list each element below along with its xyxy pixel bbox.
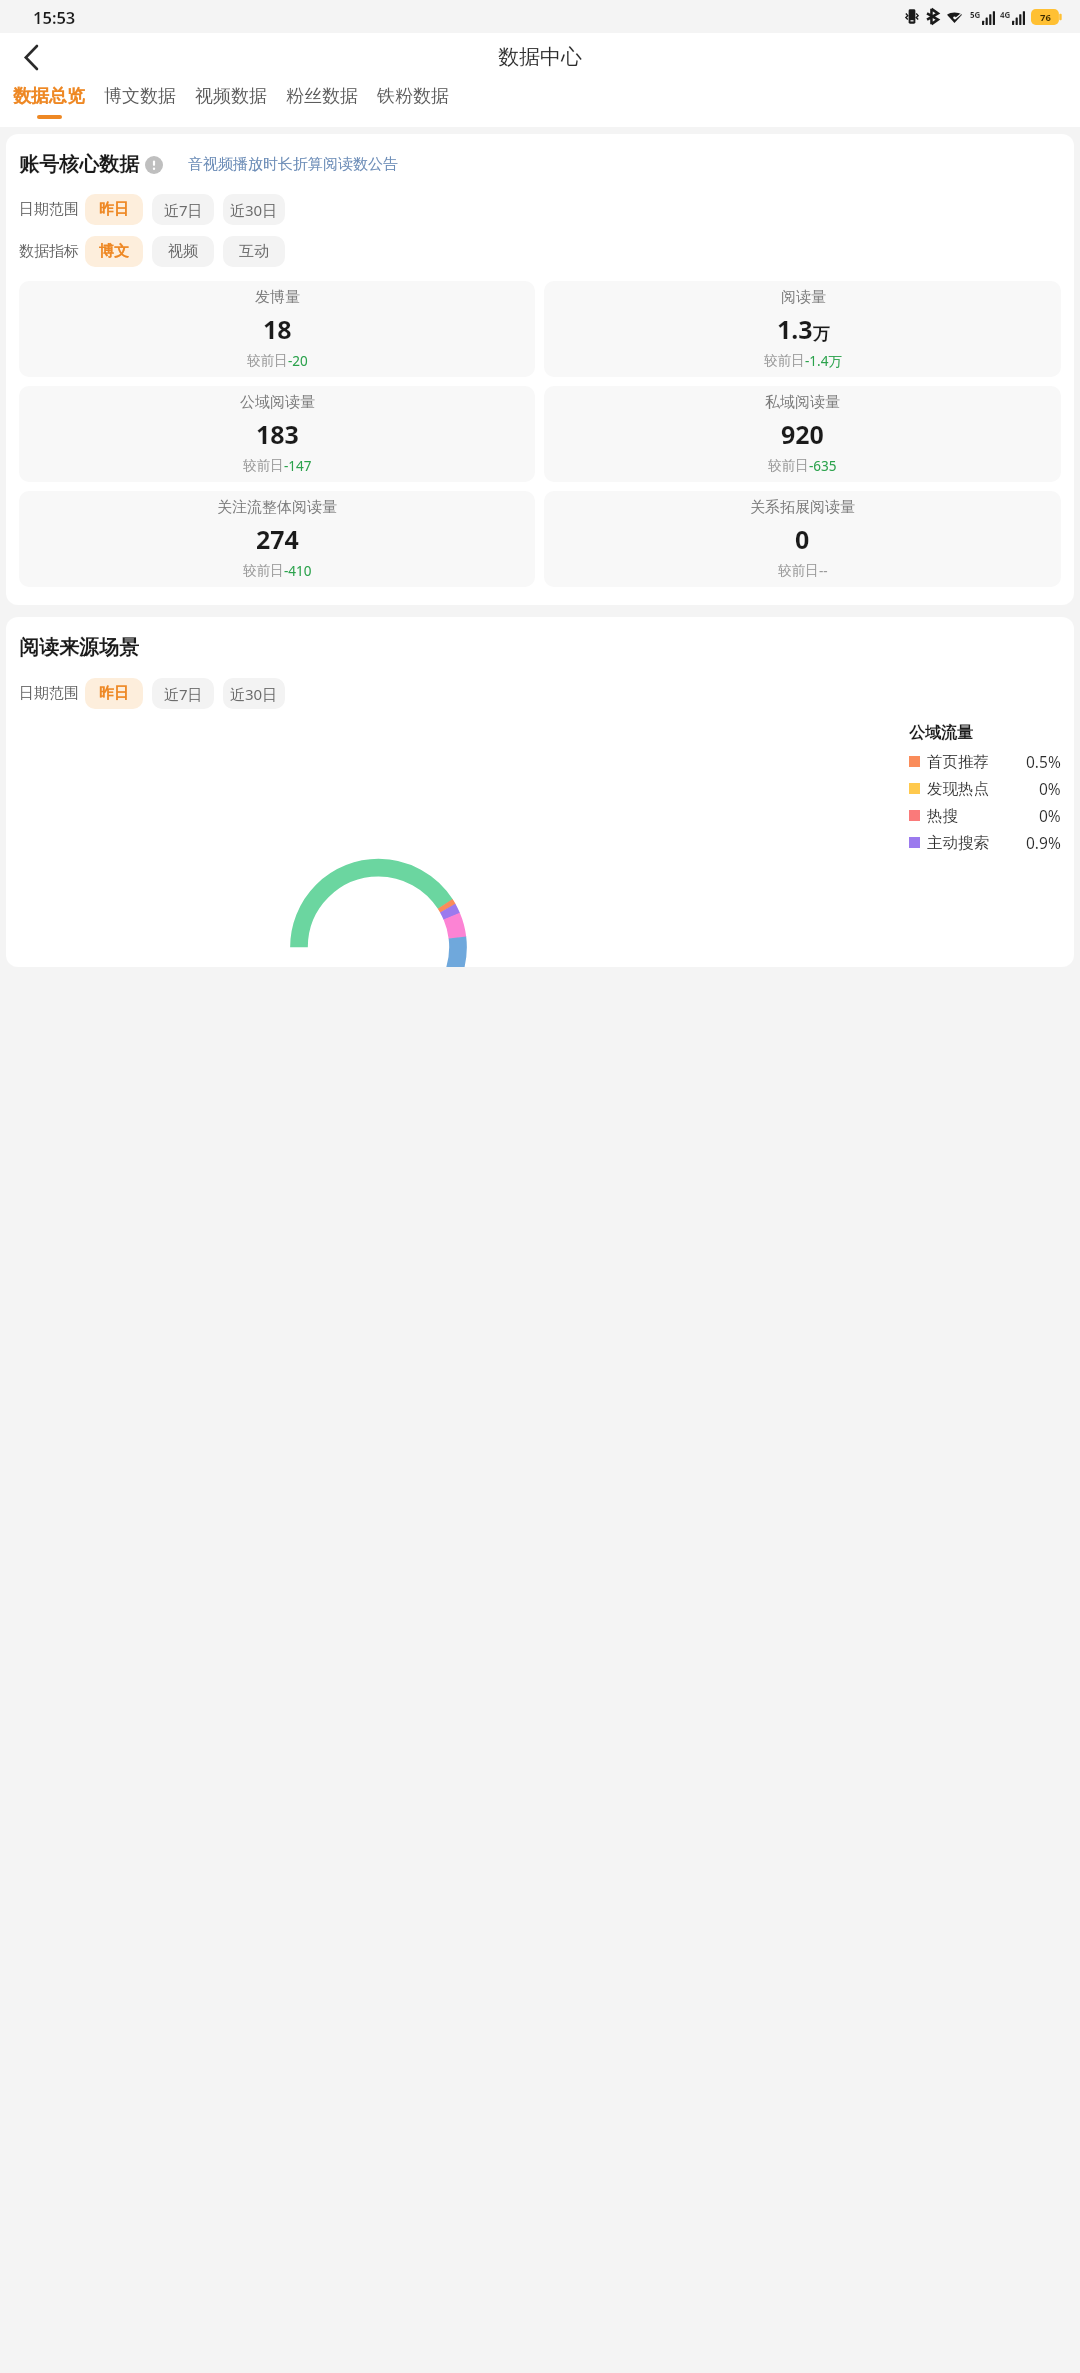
staticText: 近30日 [230, 200, 278, 220]
staticText: 较前日 [768, 457, 809, 474]
staticText: 公域流量 [909, 723, 973, 743]
staticText: 0% [1039, 778, 1061, 799]
staticText: 关系拓展阅读量 [750, 498, 855, 517]
staticText: 1.3 [777, 312, 813, 346]
button[interactable]: 铁粉数据 [377, 80, 449, 115]
staticText: 铁粉数据 [377, 85, 449, 108]
staticText: 博文数据 [104, 85, 176, 108]
button[interactable]: Back [8, 34, 54, 80]
staticText: 昨日 [99, 200, 129, 219]
staticText: 较前日 [778, 562, 819, 579]
staticText: 数据指标 [19, 242, 79, 261]
staticText: 阅读来源场景 [19, 635, 139, 660]
staticText: 首页推荐 [927, 752, 989, 772]
button[interactable]: 近7日 [152, 678, 214, 709]
staticText: -147 [284, 457, 312, 475]
staticText: 发博量 [255, 288, 300, 307]
staticText: 4G [1000, 9, 1011, 20]
staticText: 公域阅读量 [240, 393, 315, 412]
staticText: 音视频播放时长折算阅读数公告 [188, 155, 398, 174]
staticText: 发现热点 [927, 779, 989, 799]
button[interactable]: Info [145, 156, 163, 174]
button[interactable]: 视频 [152, 236, 214, 267]
staticText: 0.5% [1026, 751, 1061, 772]
button[interactable]: 昨日 [85, 194, 143, 225]
staticText: 274 [256, 522, 299, 556]
staticText: 较前日 [247, 352, 288, 369]
staticText: 万 [813, 324, 830, 345]
button[interactable]: 阅读量 [544, 281, 1061, 377]
staticText: 920 [781, 417, 824, 451]
button[interactable]: 近30日 [223, 194, 285, 225]
staticText: -410 [284, 562, 312, 580]
button[interactable]: 近30日 [223, 678, 285, 709]
button[interactable]: 互动 [223, 236, 285, 267]
staticText: 私域阅读量 [765, 393, 840, 412]
staticText: 0.9% [1026, 832, 1061, 853]
staticText: -- [819, 562, 828, 580]
button[interactable]: 发博量 [19, 281, 535, 377]
button[interactable]: 粉丝数据 [286, 80, 358, 115]
staticText: 近30日 [230, 684, 278, 704]
button[interactable]: 音视频播放时长折算阅读数公告 [188, 155, 398, 174]
button[interactable]: 博文 [85, 236, 143, 267]
staticText: 日期范围 [19, 684, 79, 703]
staticText: -20 [288, 352, 308, 370]
button[interactable]: 关注流整体阅读量 [19, 491, 535, 587]
staticText: 视频数据 [195, 85, 267, 108]
staticText: 数据中心 [498, 44, 582, 70]
button[interactable]: 近7日 [152, 194, 214, 225]
staticText: 近7日 [164, 684, 203, 704]
staticText: 数据总览 [13, 85, 85, 108]
staticText: 较前日 [243, 457, 284, 474]
staticText: 阅读量 [781, 288, 826, 307]
staticText: -1.4万 [805, 352, 842, 370]
staticText: 5G [970, 9, 981, 20]
staticText: -635 [809, 457, 837, 475]
staticText: 18 [263, 312, 292, 346]
staticText: 近7日 [164, 200, 203, 220]
button[interactable]: 数据总览 [13, 80, 85, 119]
button[interactable]: 昨日 [85, 678, 143, 709]
button[interactable]: 博文数据 [104, 80, 176, 115]
staticText: 互动 [239, 242, 269, 261]
staticText: 日期范围 [19, 200, 79, 219]
button[interactable]: 关系拓展阅读量 [544, 491, 1061, 587]
staticText: 较前日 [243, 562, 284, 579]
button[interactable]: 公域阅读量 [19, 386, 535, 482]
staticText: 主动搜索 [927, 833, 989, 853]
staticText: 账号核心数据 [19, 152, 139, 177]
staticText: 较前日 [764, 352, 805, 369]
staticText: 0% [1039, 805, 1061, 826]
button[interactable]: 私域阅读量 [544, 386, 1061, 482]
staticText: 183 [256, 417, 299, 451]
staticText: 76 [1040, 11, 1051, 24]
staticText: 0 [795, 522, 810, 556]
staticText: 粉丝数据 [286, 85, 358, 108]
staticText: 15:53 [33, 6, 76, 28]
staticText: 博文 [99, 242, 129, 261]
staticText: 关注流整体阅读量 [217, 498, 337, 517]
staticText: 热搜 [927, 806, 958, 826]
staticText: 视频 [168, 242, 198, 261]
button[interactable]: 视频数据 [195, 80, 267, 115]
staticText: 昨日 [99, 684, 129, 703]
